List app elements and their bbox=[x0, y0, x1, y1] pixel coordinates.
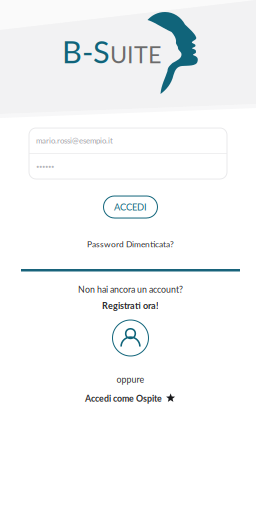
button[interactable]: Continue as guest bbox=[112, 320, 148, 356]
staticText: Registrati ora! bbox=[102, 300, 159, 311]
staticText: ACCEDI bbox=[114, 201, 147, 213]
button[interactable]: Accedi come Ospite bbox=[85, 391, 176, 406]
button[interactable]: Password Dimenticata? bbox=[87, 237, 174, 251]
staticText: oppure bbox=[116, 374, 144, 385]
button[interactable]: Registrati ora! bbox=[102, 298, 159, 313]
staticText: Non hai ancora un account? bbox=[78, 284, 183, 295]
button[interactable]: ACCEDI bbox=[103, 196, 157, 218]
staticText: mario.rossi@esempio.it bbox=[36, 136, 113, 145]
staticText: Accedi come Ospite bbox=[85, 393, 162, 404]
staticText: B-S bbox=[62, 33, 110, 70]
staticText: •••••• bbox=[36, 163, 54, 170]
staticText: UITE bbox=[110, 40, 161, 68]
staticText: Password Dimenticata? bbox=[87, 239, 174, 249]
